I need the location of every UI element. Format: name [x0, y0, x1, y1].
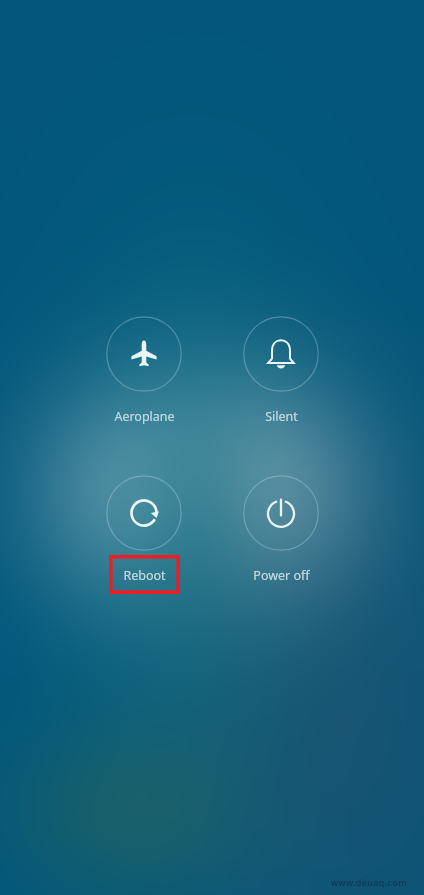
staticText: Power off — [253, 567, 310, 584]
staticText: Silent — [265, 408, 298, 425]
button[interactable]: Reboot — [84, 475, 204, 585]
button[interactable]: Power off — [221, 475, 341, 585]
staticText: www.deuaq.com — [331, 876, 407, 888]
staticText: Reboot — [123, 567, 166, 584]
button[interactable]: Silent mode — [221, 316, 341, 426]
button[interactable]: Aeroplane mode — [84, 316, 204, 426]
staticText: Aeroplane — [114, 408, 175, 425]
